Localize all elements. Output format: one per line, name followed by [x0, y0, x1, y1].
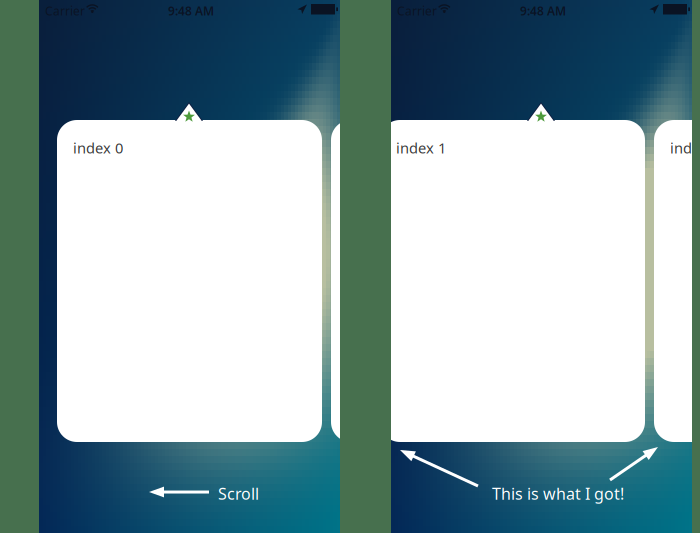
- staticText: index 2: [670, 138, 700, 157]
- staticText: 9:48 AM: [168, 3, 214, 19]
- button[interactable]: index 0: [57, 120, 322, 442]
- button[interactable]: index 1: [380, 120, 645, 442]
- staticText: 9:48 AM: [520, 3, 566, 19]
- staticText: Scroll: [218, 483, 259, 504]
- staticText: Carrier: [45, 3, 85, 19]
- staticText: index 0: [73, 138, 123, 157]
- staticText: Carrier: [397, 3, 437, 19]
- button[interactable]: index 1: [331, 120, 596, 442]
- staticText: index 1: [396, 138, 446, 157]
- staticText: This is what I got!: [492, 483, 624, 504]
- staticText: index 1: [347, 138, 397, 157]
- button[interactable]: index 2: [654, 120, 700, 442]
